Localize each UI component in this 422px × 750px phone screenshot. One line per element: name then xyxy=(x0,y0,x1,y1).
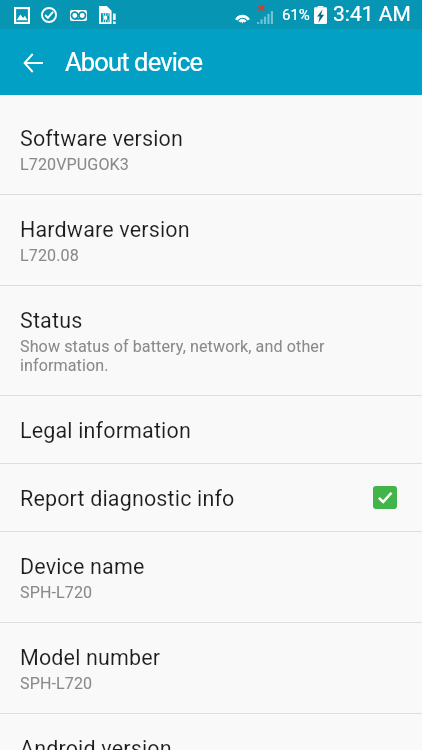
staticText: Model number xyxy=(20,645,161,670)
staticText: Legal information xyxy=(20,418,191,443)
staticText: Device name xyxy=(20,554,145,579)
staticText: Hardware version xyxy=(20,217,190,242)
staticText: Show status of battery, network, and oth… xyxy=(20,337,325,375)
button[interactable]: Report diagnostic info xyxy=(0,464,422,531)
staticText: Android version xyxy=(20,736,172,750)
button[interactable]: Model number xyxy=(0,623,422,713)
button[interactable]: Navigate up xyxy=(10,39,57,86)
other: Report diagnostic info checkbox xyxy=(373,486,397,509)
staticText: L720.08 xyxy=(20,246,79,265)
staticText: 61% xyxy=(282,6,310,24)
staticText: Status xyxy=(20,308,83,333)
staticText: About device xyxy=(65,47,203,77)
button[interactable]: Software version xyxy=(0,104,422,194)
button[interactable]: Status xyxy=(0,286,422,395)
button[interactable]: Legal information xyxy=(0,396,422,463)
staticText: SPH-L720 xyxy=(20,583,93,602)
button[interactable]: Android version xyxy=(0,714,422,750)
staticText: L720VPUGOK3 xyxy=(20,155,129,174)
button[interactable]: Hardware version xyxy=(0,195,422,285)
staticText: Software version xyxy=(20,126,184,151)
staticText: SPH-L720 xyxy=(20,674,93,693)
staticText: Report diagnostic info xyxy=(20,486,235,511)
staticText: 3:41 AM xyxy=(333,2,411,27)
button[interactable]: Device name xyxy=(0,532,422,622)
